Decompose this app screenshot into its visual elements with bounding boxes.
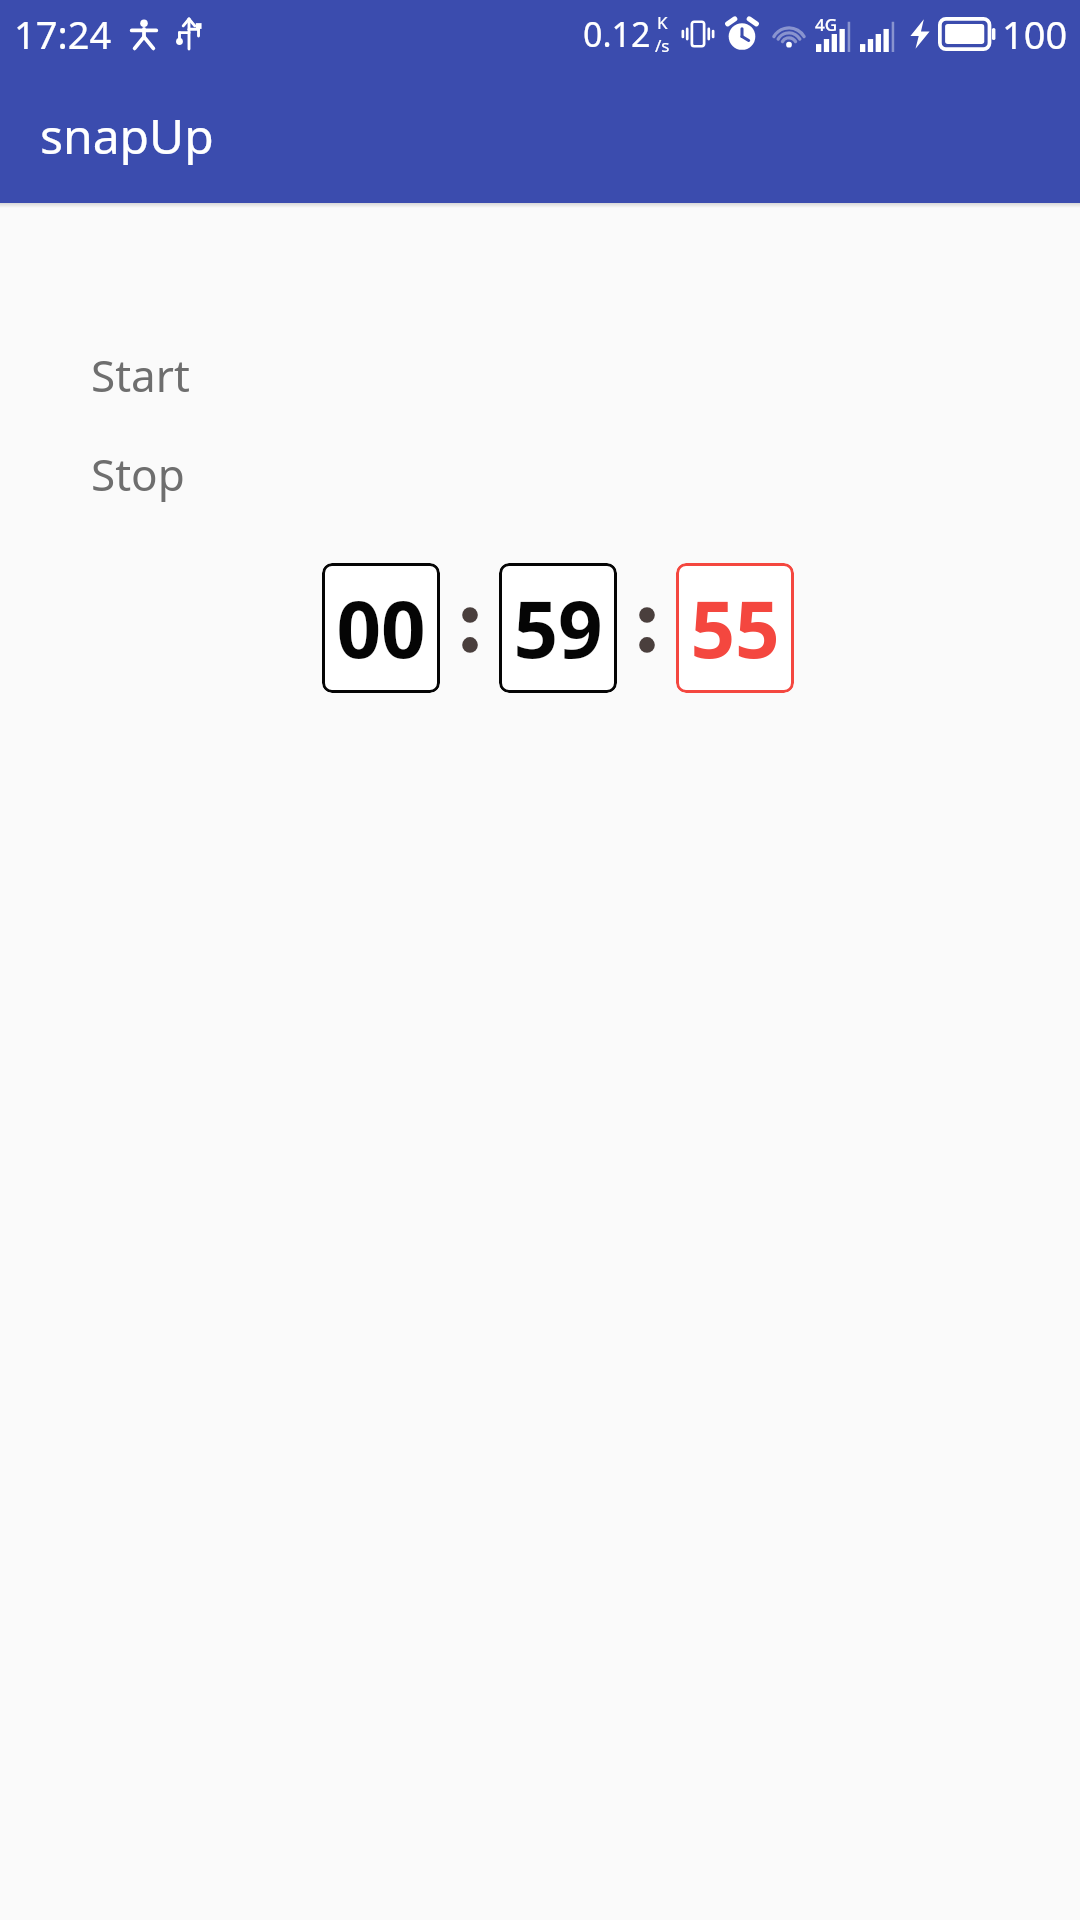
staticText: 0.12 (583, 11, 651, 57)
staticText: Stop (91, 444, 185, 504)
staticText: snapUp (40, 103, 214, 168)
staticText: Start (91, 345, 190, 405)
staticText: 59 (513, 575, 603, 681)
button[interactable]: Stop (91, 444, 185, 504)
staticText: /s (655, 34, 670, 57)
staticText: K (657, 11, 668, 34)
staticText: 55 (690, 575, 780, 681)
staticText: 00 (336, 575, 426, 681)
button[interactable]: 55 (676, 563, 794, 693)
button[interactable]: 00 (322, 563, 440, 693)
button[interactable]: 59 (499, 563, 617, 693)
button[interactable]: Start (91, 345, 190, 405)
staticText: 4G (815, 13, 838, 36)
staticText: 17:24 (14, 8, 112, 60)
staticText: 100 (1002, 8, 1068, 60)
